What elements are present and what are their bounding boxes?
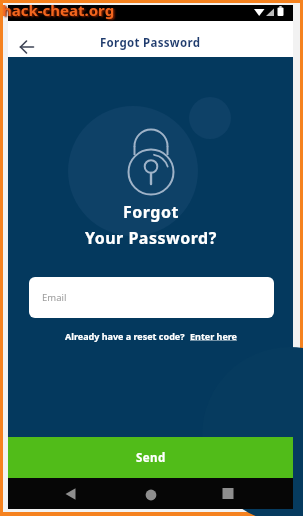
staticText: Forgot Password	[100, 35, 201, 51]
button[interactable]: Email	[29, 277, 274, 318]
staticText: hack-cheat.org	[2, 0, 115, 20]
button[interactable]	[14, 34, 40, 60]
button[interactable]: Send	[8, 437, 293, 478]
staticText: Already have a reset code?	[65, 330, 190, 342]
staticText: Forgot	[123, 201, 179, 223]
staticText: Email	[42, 291, 67, 304]
staticText: Enter here	[190, 330, 237, 342]
button[interactable]	[8, 478, 103, 509]
button[interactable]	[103, 478, 198, 509]
staticText: Your Password?	[85, 227, 217, 249]
button[interactable]	[198, 478, 293, 509]
staticText: Send	[136, 450, 166, 466]
button[interactable]: Enter here	[190, 330, 237, 342]
